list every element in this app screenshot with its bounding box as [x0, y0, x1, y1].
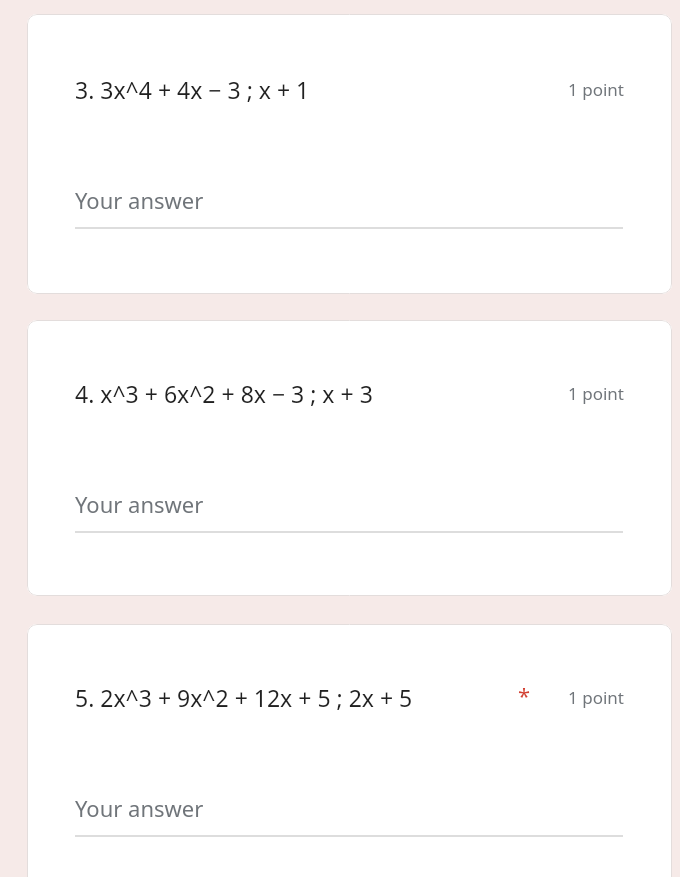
- staticText: Your answer: [75, 793, 204, 823]
- staticText: Your answer: [75, 489, 204, 519]
- staticText: 5. 2x^3 + 9x^2 + 12x + 5 ; 2x + 5: [75, 682, 413, 713]
- button[interactable]: Your answer: [75, 181, 623, 229]
- button[interactable]: [27, 14, 672, 294]
- staticText: 1 point: [494, 382, 624, 406]
- button[interactable]: Your answer: [75, 485, 623, 533]
- staticText: *: [518, 680, 531, 702]
- staticText: 1 point: [494, 686, 624, 710]
- staticText: 4. x^3 + 6x^2 + 8x − 3 ; x + 3: [75, 378, 373, 409]
- button[interactable]: [27, 624, 672, 877]
- staticText: 1 point: [494, 78, 624, 102]
- staticText: 3. 3x^4 + 4x − 3 ; x + 1: [75, 74, 310, 105]
- staticText: Your answer: [75, 185, 204, 215]
- button[interactable]: [27, 320, 672, 596]
- button[interactable]: Your answer: [75, 789, 623, 837]
